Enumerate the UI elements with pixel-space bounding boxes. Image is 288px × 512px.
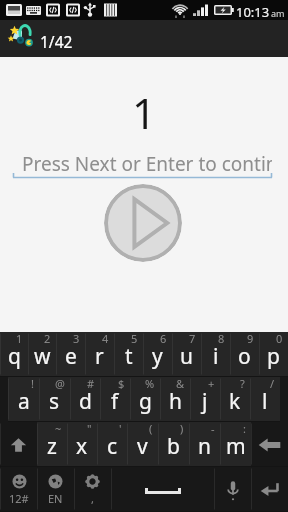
button[interactable]: % (130, 377, 160, 422)
button[interactable]: ! (8, 377, 39, 422)
staticText: a (18, 387, 30, 416)
staticText: g (139, 387, 152, 416)
button[interactable]: 3 (56, 332, 85, 377)
staticText: 10:13 (236, 3, 270, 21)
staticText: ~ (55, 421, 62, 436)
staticText: 0 (276, 331, 283, 346)
button[interactable]: - (189, 422, 220, 467)
staticText: " (87, 421, 92, 436)
staticText: h (169, 387, 182, 416)
staticText: x (76, 432, 88, 461)
button[interactable]: ~ (37, 422, 67, 467)
staticText: ? (240, 376, 245, 391)
staticText: 1 (0, 84, 288, 141)
staticText: , (91, 491, 94, 506)
button[interactable]: ' (97, 422, 127, 467)
button[interactable]: 0 (259, 332, 288, 377)
button[interactable]: # (70, 377, 100, 422)
staticText: 7 (189, 331, 196, 346)
staticText: o (238, 342, 251, 371)
button[interactable]: + (190, 377, 220, 422)
staticText: n (198, 432, 211, 461)
button[interactable]: 2 (28, 332, 56, 377)
staticText: : (243, 421, 246, 436)
button[interactable]: 7 (172, 332, 201, 377)
button[interactable]: Language (37, 467, 74, 512)
staticText: / (270, 376, 275, 391)
staticText: q (8, 342, 21, 371)
button[interactable]: : (220, 422, 251, 467)
staticText: 5 (131, 331, 138, 346)
button[interactable]: Play (104, 184, 182, 262)
staticText: ' (119, 421, 122, 436)
staticText: s (49, 387, 60, 416)
button[interactable]: 9 (230, 332, 259, 377)
button[interactable]: Shift (0, 422, 37, 467)
staticText: 6 (160, 331, 167, 346)
staticText: am (271, 7, 285, 19)
staticText: 9 (247, 331, 254, 346)
button[interactable]: @ (39, 377, 70, 422)
staticText: b (167, 432, 180, 461)
staticText: @ (55, 376, 65, 391)
button[interactable]: " (67, 422, 97, 467)
staticText: z (47, 432, 57, 461)
staticText: f (111, 387, 119, 416)
button[interactable]: ? (220, 377, 250, 422)
staticText: 8 (218, 331, 225, 346)
staticText: w (34, 342, 51, 371)
button[interactable]: Space (111, 467, 214, 512)
staticText: - (211, 421, 215, 436)
button[interactable]: $ (100, 377, 130, 422)
button[interactable]: Enter (251, 467, 288, 512)
staticText: l (262, 387, 268, 416)
button[interactable]: 6 (143, 332, 172, 377)
staticText: 1 (16, 331, 23, 346)
button[interactable]: 1 (0, 332, 28, 377)
staticText: + (208, 376, 215, 391)
staticText: d (79, 387, 92, 416)
button[interactable]: 8 (201, 332, 230, 377)
staticText: Press Next or Enter to continue (22, 151, 272, 177)
button[interactable]: 4 (85, 332, 114, 377)
button[interactable]: Symbols (0, 467, 37, 512)
staticText: m (226, 432, 246, 461)
staticText: 12# (9, 491, 29, 506)
staticText: 4 (102, 331, 109, 346)
staticText: EN (48, 491, 63, 506)
button[interactable]: / (250, 377, 280, 422)
staticText: v (137, 432, 148, 461)
staticText: r (95, 342, 104, 371)
button[interactable]: ( (127, 422, 158, 467)
button[interactable]: & (160, 377, 190, 422)
staticText: y (152, 342, 163, 371)
staticText: k (229, 387, 241, 416)
staticText: ( (149, 421, 153, 436)
staticText: 1/42 (40, 31, 73, 52)
button[interactable]: Settings (74, 467, 111, 512)
staticText: t (125, 342, 133, 371)
button[interactable]: ) (158, 422, 189, 467)
staticText: ) (180, 421, 184, 436)
button[interactable]: 5 (114, 332, 143, 377)
staticText: ! (31, 376, 34, 391)
staticText: # (87, 376, 95, 391)
staticText: p (267, 342, 280, 371)
staticText: c (107, 432, 118, 461)
staticText: & (176, 376, 185, 391)
staticText: % (145, 376, 155, 391)
button[interactable]: Backspace (251, 422, 288, 467)
staticText: $ (118, 376, 125, 391)
button[interactable]: Voice input (214, 467, 251, 512)
staticText: i (213, 342, 219, 371)
staticText: u (180, 342, 193, 371)
staticText: j (202, 387, 208, 416)
staticText: 3 (73, 331, 80, 346)
staticText: 2 (44, 331, 51, 346)
staticText: e (65, 342, 77, 371)
